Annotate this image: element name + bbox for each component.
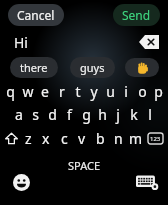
button[interactable]: Emoji suggestion [125,58,159,77]
staticText: f [67,105,72,124]
staticText: p [154,82,163,101]
staticText: e [41,82,49,101]
staticText: SPACE [68,158,101,173]
button[interactable]: z [20,126,37,150]
staticText: w [22,82,34,101]
button[interactable]: i [118,80,134,103]
button[interactable]: b [91,126,109,150]
staticText: y [90,82,98,101]
button[interactable]: there [10,57,58,78]
button[interactable]: j [110,103,126,126]
staticText: Cancel [17,7,55,23]
staticText: t [75,82,81,101]
button[interactable]: y [86,80,102,103]
button[interactable]: Shift [2,126,20,150]
button[interactable]: Emoji keyboard [8,169,34,195]
button[interactable]: n [109,126,127,150]
staticText: c [61,129,68,148]
button[interactable]: c [55,126,73,150]
button[interactable]: a [10,103,27,126]
staticText: m [129,129,143,148]
button[interactable]: g [78,103,94,126]
staticText: Send [122,7,151,23]
button[interactable]: Space [41,163,128,193]
button[interactable]: q [2,80,19,103]
button[interactable]: Backspace [138,34,160,50]
staticText: i [124,82,128,101]
staticText: d [48,105,57,124]
staticText: v [78,129,86,148]
staticText: n [114,129,123,148]
staticText: u [106,82,115,101]
button[interactable]: m [127,126,145,150]
staticText: 123 [150,135,161,143]
staticText: j [116,105,120,124]
staticText: b [96,129,105,148]
button[interactable]: u [102,80,118,103]
staticText: Hi [14,33,28,52]
button[interactable]: Switch keyboard [132,170,162,194]
button[interactable]: guys [70,57,115,78]
staticText: l [148,105,152,124]
staticText: r [59,82,65,101]
staticText: h [98,105,107,124]
staticText: g [82,105,91,124]
staticText: z [25,129,32,148]
button[interactable]: Numbers and symbols [145,126,166,150]
button[interactable]: h [94,103,110,126]
button[interactable]: Cancel [8,4,64,26]
staticText: o [138,82,147,101]
button[interactable]: k [126,103,142,126]
staticText: k [130,105,138,124]
button[interactable]: d [44,103,61,126]
button[interactable]: Send [113,4,160,26]
button[interactable]: e [36,80,53,103]
button[interactable]: p [150,80,166,103]
button[interactable]: t [70,80,86,103]
staticText: x [42,129,50,148]
staticText: a [15,105,23,124]
staticText: s [32,105,39,124]
button[interactable]: x [37,126,55,150]
button[interactable]: l [142,103,158,126]
button[interactable]: f [61,103,78,126]
button[interactable]: o [134,80,150,103]
button[interactable]: s [27,103,44,126]
button[interactable]: v [73,126,91,150]
staticText: there [20,60,48,75]
button[interactable]: w [19,80,36,103]
button[interactable]: r [53,80,70,103]
staticText: q [6,82,15,101]
staticText: guys [80,60,105,75]
